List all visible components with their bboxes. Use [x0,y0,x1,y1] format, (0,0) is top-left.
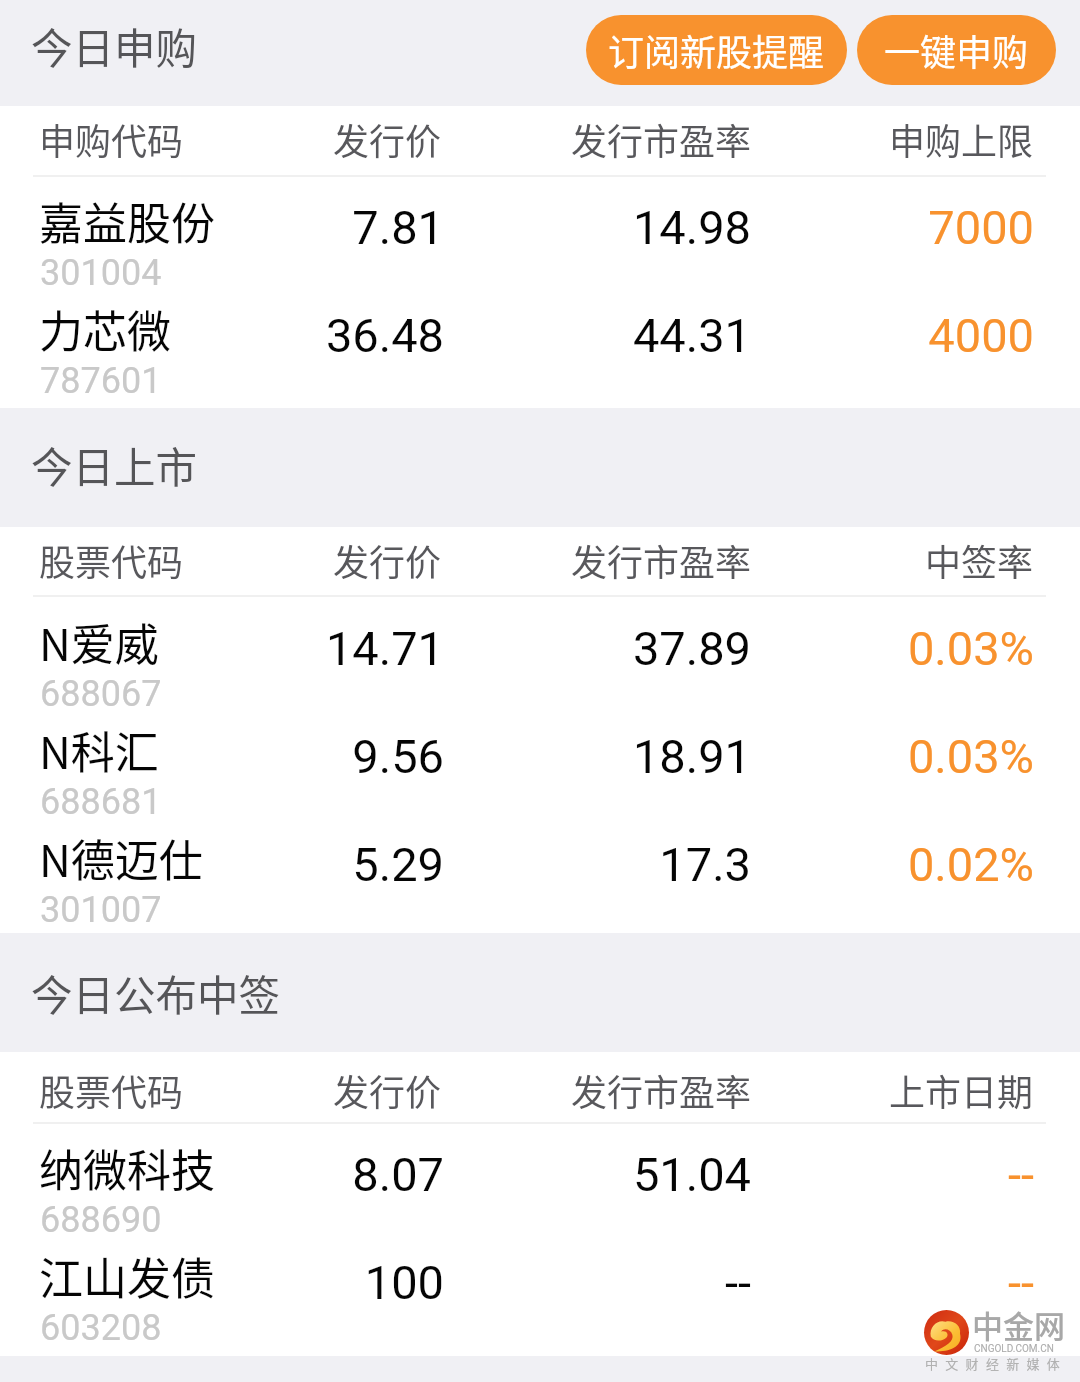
staticText: 申购代码 [39,113,184,165]
staticText: 嘉益股份 [39,189,215,253]
staticText: 订阅新股提醒 [608,24,825,76]
staticText: 17.3 [0,837,751,892]
staticText: N德迈仕 [39,826,203,890]
staticText: 37.89 [0,621,751,676]
button[interactable]: 嘉益股份 [0,173,1080,281]
staticText: 7.81 [0,200,444,255]
staticText: 中签率 [0,534,1033,586]
staticText: -- [0,1147,1034,1202]
staticText: -- [0,1255,751,1310]
staticText: 688681 [40,781,162,823]
staticText: 发行市盈率 [0,113,751,165]
staticText: 发行市盈率 [0,534,751,586]
staticText: 301004 [40,252,162,294]
staticText: 纳微科技 [39,1136,215,1200]
staticText: 股票代码 [39,1064,184,1116]
staticText: 发行价 [0,1064,441,1116]
button[interactable]: N科汇 [0,702,1080,810]
button[interactable]: N德迈仕 [0,810,1080,918]
staticText: 7000 [0,200,1034,255]
staticText: 9.56 [0,729,444,784]
staticText: 上市日期 [0,1064,1033,1116]
staticText: 发行市盈率 [0,1064,751,1116]
staticText: 44.31 [0,308,751,363]
button[interactable]: 江山发债 [0,1228,1080,1336]
staticText: 申购上限 [0,113,1033,165]
staticText: 5.29 [0,837,444,892]
other: 中金网 logo [924,1310,969,1355]
staticText: 301007 [40,889,162,931]
staticText: 688690 [40,1199,162,1241]
button[interactable]: 一键申购 [857,15,1056,85]
button[interactable]: 订阅新股提醒 [586,15,847,85]
staticText: 18.91 [0,729,751,784]
staticText: -- [0,1255,1034,1310]
staticText: 0.03% [0,621,1034,676]
staticText: 一键申购 [884,24,1029,76]
staticText: 股票代码 [39,534,184,586]
staticText: 14.71 [0,621,444,676]
staticText: 力芯微 [39,297,171,361]
staticText: 51.04 [0,1147,751,1202]
staticText: 今日上市 [31,435,198,495]
staticText: N科汇 [39,718,159,782]
staticText: 100 [0,1255,444,1310]
staticText: 0.03% [0,729,1034,784]
staticText: 今日公布中签 [31,963,281,1023]
staticText: 发行价 [0,534,441,586]
staticText: 787601 [40,360,162,402]
staticText: 4000 [0,308,1034,363]
staticText: 603208 [40,1307,162,1349]
staticText: 36.48 [0,308,444,363]
staticText: 8.07 [0,1147,444,1202]
staticText: 今日申购 [31,16,198,76]
staticText: N爱威 [39,610,159,674]
button[interactable]: 力芯微 [0,281,1080,389]
button[interactable]: N爱威 [0,594,1080,702]
staticText: 中文财经新媒体 [925,1354,1068,1373]
staticText: 江山发债 [39,1244,215,1308]
staticText: 14.98 [0,200,751,255]
button[interactable]: 纳微科技 [0,1120,1080,1228]
staticText: 中金网 [972,1302,1065,1347]
staticText: 0.02% [0,837,1034,892]
staticText: 688067 [40,673,162,715]
staticText: CNGOLD.COM.CN [974,1343,1054,1355]
staticText: 发行价 [0,113,441,165]
